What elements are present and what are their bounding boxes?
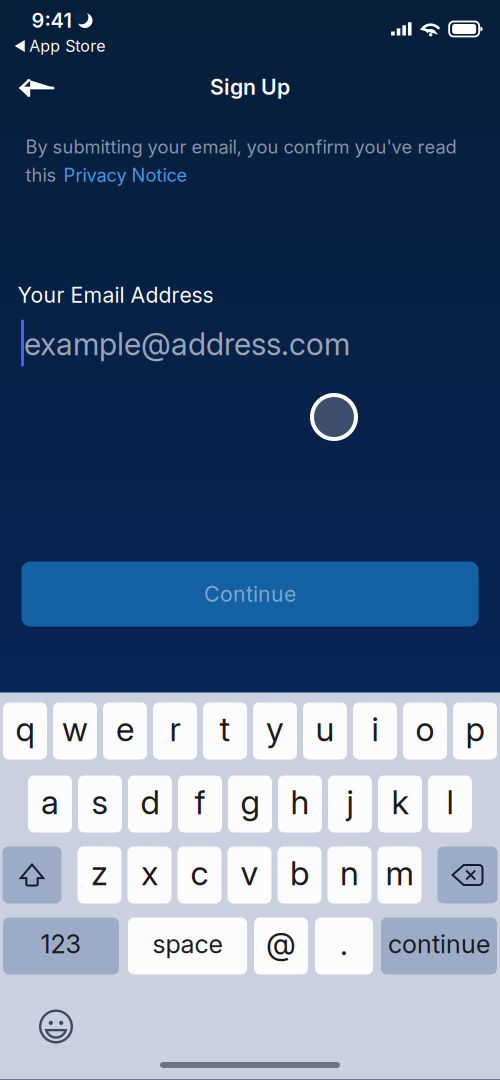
staticText: q	[15, 709, 34, 749]
button[interactable]: Continue	[21, 561, 478, 626]
staticText: x	[141, 853, 158, 893]
staticText: y	[266, 709, 284, 749]
staticText: App Store	[29, 36, 105, 56]
button[interactable]: a	[28, 775, 72, 832]
button[interactable]: v	[227, 846, 271, 903]
button[interactable]: p	[453, 702, 497, 759]
staticText: i	[371, 709, 378, 749]
button[interactable]: Shift	[2, 846, 61, 903]
button[interactable]: space	[128, 917, 247, 974]
button[interactable]: m	[377, 846, 421, 903]
button[interactable]: e	[103, 702, 147, 759]
staticText: c	[190, 853, 208, 893]
staticText: Your Email Address	[17, 282, 213, 308]
button[interactable]: k	[378, 775, 422, 832]
button[interactable]: i	[353, 702, 397, 759]
staticText: a	[41, 782, 59, 822]
button[interactable]: b	[277, 846, 321, 903]
button[interactable]: j	[328, 775, 372, 832]
button[interactable]: Emoji keyboard	[28, 1006, 84, 1046]
staticText: o	[415, 709, 434, 749]
staticText: e	[116, 709, 134, 749]
staticText: Privacy Notice	[63, 164, 187, 186]
staticText: @	[266, 925, 296, 962]
button[interactable]: y	[253, 702, 297, 759]
staticText: v	[240, 853, 258, 893]
staticText: this	[25, 164, 56, 186]
button[interactable]: n	[327, 846, 371, 903]
staticText: 9:41	[31, 8, 71, 33]
staticText: n	[340, 853, 359, 893]
staticText: By submitting your email, you confirm yo…	[25, 136, 456, 158]
staticText: f	[194, 782, 205, 822]
staticText: s	[91, 782, 108, 822]
button[interactable]: o	[403, 702, 447, 759]
button[interactable]: f	[178, 775, 222, 832]
staticText: Sign Up	[210, 74, 290, 100]
staticText: t	[219, 709, 230, 749]
button[interactable]: Delete	[437, 846, 497, 903]
staticText: 123	[40, 929, 81, 959]
button[interactable]: z	[77, 846, 121, 903]
button[interactable]: u	[303, 702, 347, 759]
staticText: h	[290, 782, 309, 822]
button[interactable]: r	[153, 702, 197, 759]
staticText: k	[391, 782, 408, 822]
button[interactable]: .	[315, 917, 373, 974]
staticText: .	[340, 925, 348, 962]
button[interactable]: q	[3, 702, 47, 759]
button[interactable]: l	[428, 775, 472, 832]
staticText: d	[140, 782, 159, 822]
button[interactable]: continue	[381, 917, 497, 974]
button[interactable]: Back	[6, 64, 68, 112]
staticText: continue	[388, 929, 490, 959]
button[interactable]: d	[128, 775, 172, 832]
staticText: z	[91, 853, 108, 893]
staticText: r	[169, 709, 180, 749]
button[interactable]: w	[53, 702, 97, 759]
button[interactable]: h	[278, 775, 322, 832]
button[interactable]: s	[78, 775, 122, 832]
button[interactable]: Privacy Notice	[63, 164, 187, 186]
staticText: example@address.com	[24, 325, 350, 362]
staticText: u	[315, 709, 334, 749]
staticText: j	[346, 782, 353, 822]
staticText: p	[465, 709, 484, 749]
staticText: b	[290, 853, 309, 893]
staticText: g	[240, 782, 259, 822]
staticText: m	[385, 853, 413, 893]
staticText: w	[62, 709, 88, 749]
button[interactable]: 123	[3, 917, 119, 974]
staticText: l	[446, 782, 453, 822]
button[interactable]: g	[228, 775, 272, 832]
button[interactable]: x	[127, 846, 171, 903]
button[interactable]: t	[203, 702, 247, 759]
button[interactable]: @	[254, 917, 308, 974]
staticText: space	[152, 929, 222, 959]
staticText: Continue	[204, 581, 296, 607]
button[interactable]: c	[177, 846, 221, 903]
